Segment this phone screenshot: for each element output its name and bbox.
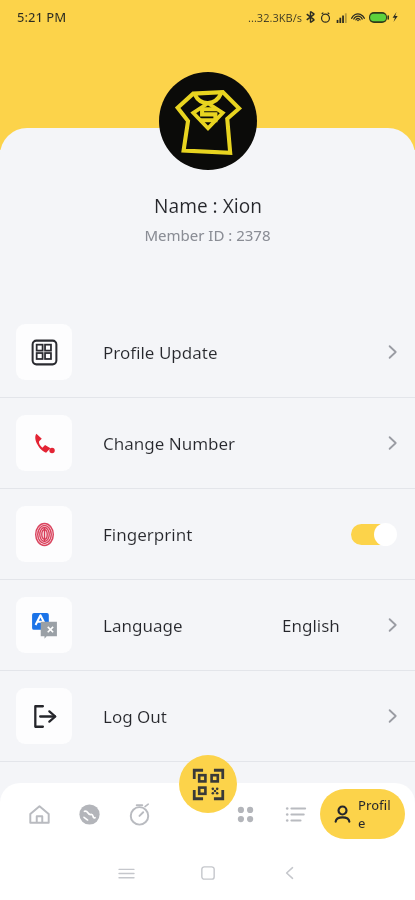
staticText: Member ID : 2378 (144, 225, 271, 245)
staticText: Name : Xion (154, 193, 262, 219)
staticText: Change Number (103, 432, 236, 455)
button[interactable]: Scan QR code (179, 755, 237, 813)
button[interactable]: Categories (220, 791, 270, 837)
button[interactable]: Home (14, 791, 64, 837)
button[interactable]: Timer (114, 791, 164, 837)
staticText: Profile (358, 796, 392, 832)
button[interactable]: Profile Update (0, 307, 415, 397)
staticText: ...32.3KB/s (248, 10, 302, 25)
staticText: Language (103, 614, 183, 637)
button[interactable]: Profile (320, 789, 405, 839)
button[interactable]: Fingerprint (0, 489, 415, 579)
staticText: Fingerprint (103, 523, 193, 546)
button[interactable]: Explore (64, 791, 114, 837)
staticText: 5:21 PM (17, 8, 67, 26)
button[interactable]: Log Out (0, 671, 415, 761)
button[interactable]: Recents (100, 847, 152, 899)
button[interactable]: Home (182, 847, 234, 899)
button[interactable]: List (270, 791, 320, 837)
staticText: English (282, 614, 340, 637)
staticText: Log Out (103, 705, 167, 728)
button[interactable]: Language (0, 580, 415, 670)
button[interactable]: Change Number (0, 398, 415, 488)
button[interactable]: Back (264, 847, 316, 899)
button[interactable]: Fingerprint toggle (351, 522, 397, 546)
staticText: Profile Update (103, 341, 218, 364)
